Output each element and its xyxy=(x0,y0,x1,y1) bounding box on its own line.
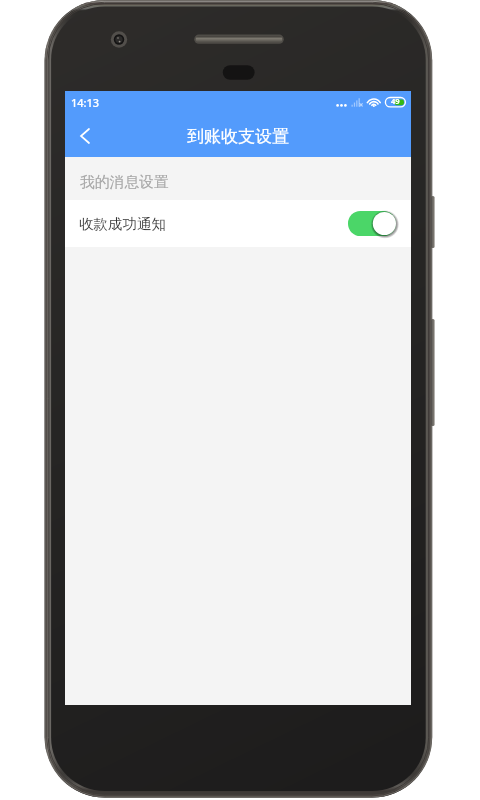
staticText: 我的消息设置 xyxy=(80,173,169,192)
button[interactable]: 收款成功通知 switch on xyxy=(348,211,396,236)
button[interactable]: 收款成功通知 xyxy=(65,200,411,247)
staticText: 49 xyxy=(391,96,400,106)
staticText: 收款成功通知 xyxy=(79,215,166,233)
button[interactable]: Back xyxy=(65,118,103,157)
staticText: 到账收支设置 xyxy=(187,126,289,147)
staticText: 14:13 xyxy=(71,95,100,110)
